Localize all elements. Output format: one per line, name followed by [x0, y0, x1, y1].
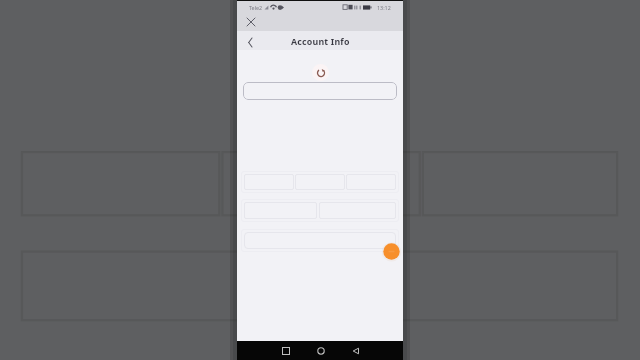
button[interactable]: Recents: [278, 343, 293, 358]
staticText: Account Info: [291, 36, 350, 48]
button[interactable]: [244, 202, 317, 219]
button[interactable]: [243, 82, 397, 100]
button[interactable]: Back: [348, 343, 363, 358]
button[interactable]: [244, 232, 396, 249]
staticText: 13:12: [377, 4, 391, 11]
button[interactable]: Add: [382, 242, 401, 261]
button[interactable]: [295, 174, 345, 190]
button[interactable]: Home: [313, 343, 328, 358]
staticText: Tele2: [249, 4, 263, 11]
button[interactable]: [346, 174, 396, 190]
button[interactable]: [244, 174, 294, 190]
button[interactable]: Close: [243, 14, 258, 29]
button[interactable]: [319, 202, 396, 219]
button[interactable]: Back: [243, 35, 257, 49]
